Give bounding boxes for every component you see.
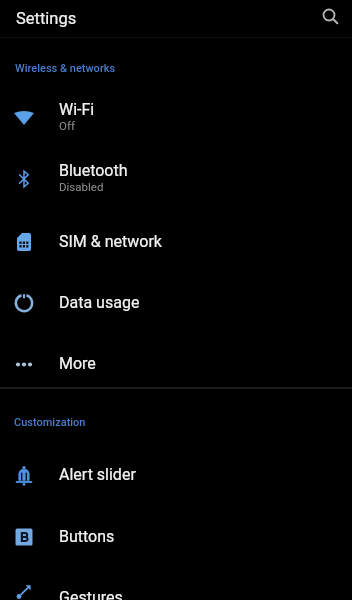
staticText: More — [59, 354, 96, 373]
staticText: Off — [59, 119, 75, 132]
button[interactable]: Wi-Fi — [0, 89, 352, 150]
staticText: Disabled — [59, 180, 104, 193]
button[interactable]: More — [0, 333, 352, 394]
staticText: Buttons — [59, 527, 115, 546]
button[interactable]: Bluetooth — [0, 150, 352, 211]
staticText: Wi-Fi — [59, 100, 95, 119]
button[interactable]: SIM & network — [0, 211, 352, 272]
staticText: Settings — [16, 9, 77, 28]
staticText: SIM & network — [59, 232, 162, 251]
button[interactable]: Data usage — [0, 272, 352, 333]
staticText: Data usage — [59, 293, 140, 312]
staticText: Bluetooth — [59, 161, 128, 180]
button[interactable]: Buttons — [0, 506, 352, 567]
staticText: Gestures — [59, 588, 123, 600]
button[interactable]: Alert slider — [0, 444, 352, 505]
staticText: Wireless & networks — [15, 62, 116, 75]
button[interactable]: Gestures — [0, 567, 352, 600]
button[interactable] — [308, 0, 352, 36]
staticText: Customization — [14, 416, 86, 429]
staticText: Alert slider — [59, 465, 136, 484]
